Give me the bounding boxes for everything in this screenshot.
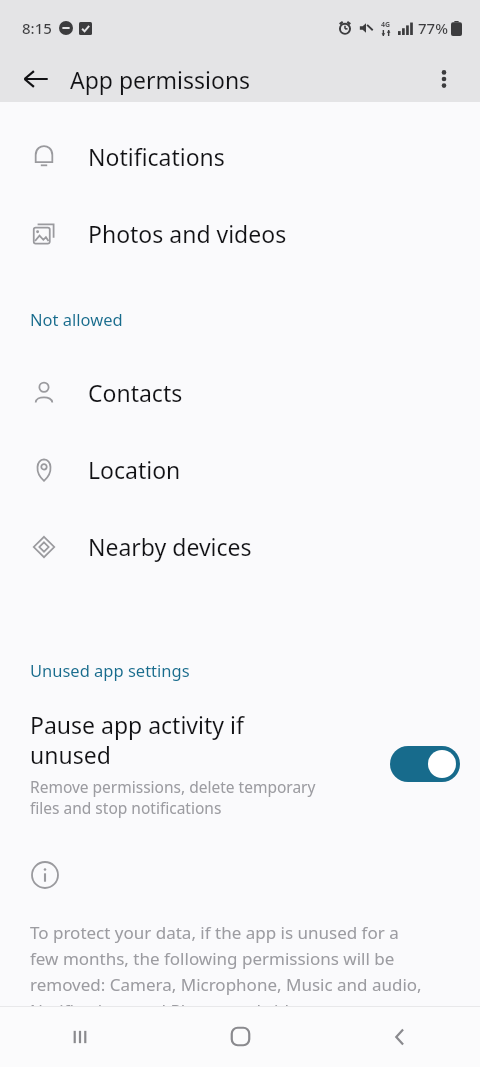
button[interactable]: Back [12,56,60,102]
staticText: 77% [418,18,448,38]
staticText: Location [88,454,181,485]
button[interactable]: Pause app activity toggle [390,746,460,782]
button[interactable]: Nearby devices [0,508,480,585]
staticText: 8:15 [22,18,52,38]
staticText: Remove permissions, delete temporary fil… [30,776,316,819]
button[interactable]: Recents [0,1006,160,1067]
staticText: App permissions [70,64,251,95]
button[interactable]: Back [320,1006,480,1067]
staticText: Contacts [88,377,183,408]
staticText: 4G [381,20,391,30]
staticText: Pause app activity if unused [30,709,244,770]
staticText: Not allowed [30,308,123,330]
button[interactable]: More options [420,56,468,102]
staticText: Photos and videos [88,218,287,249]
staticText: To protect your data, if the app is unus… [30,921,422,1006]
staticText: Notifications [88,141,225,172]
button[interactable]: Location [0,431,480,508]
button[interactable]: Pause app activity if unused [0,705,480,823]
button[interactable]: Home [160,1006,320,1067]
staticText: Unused app settings [30,659,190,681]
button[interactable]: Photos and videos [0,195,480,272]
button[interactable]: Notifications [0,118,480,195]
button[interactable]: Contacts [0,354,480,431]
staticText: Nearby devices [88,531,252,562]
